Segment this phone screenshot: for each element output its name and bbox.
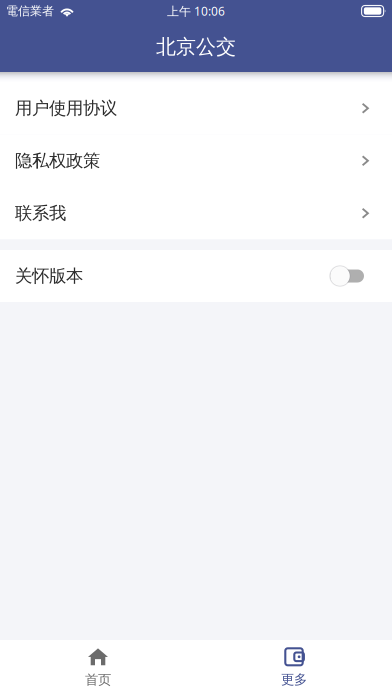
button[interactable]: 联系我: [0, 187, 392, 239]
staticText: 上午 10:06: [167, 3, 225, 19]
staticText: 关怀版本: [15, 265, 83, 287]
staticText: 联系我: [15, 203, 66, 224]
button[interactable]: 关怀版本: [0, 250, 392, 302]
button[interactable]: 更多: [196, 640, 392, 696]
staticText: 首页: [85, 672, 111, 688]
staticText: 北京公交: [156, 34, 236, 59]
button[interactable]: 首页: [0, 640, 196, 696]
staticText: 電信業者: [6, 4, 54, 18]
staticText: 更多: [281, 671, 307, 688]
staticText: 用户使用协议: [15, 98, 117, 119]
button[interactable]: 隐私权政策: [0, 134, 392, 187]
button[interactable]: 用户使用协议: [0, 82, 392, 134]
staticText: 隐私权政策: [15, 150, 100, 171]
